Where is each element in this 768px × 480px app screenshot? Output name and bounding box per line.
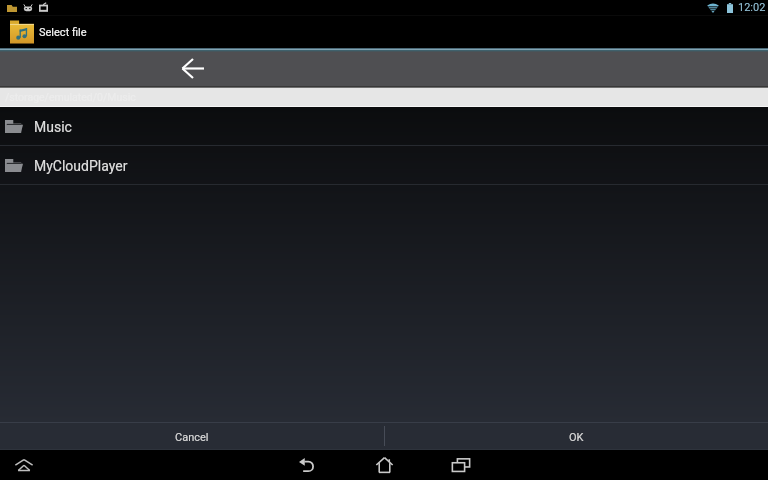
staticText: Select file <box>39 26 87 39</box>
staticText: 12:02 <box>738 1 766 14</box>
button[interactable]: Expand notifications <box>10 451 38 479</box>
button[interactable]: Back <box>292 450 322 480</box>
staticText: OK <box>569 431 584 444</box>
button[interactable]: Music <box>0 107 768 145</box>
staticText: MyCloudPlayer <box>34 158 128 174</box>
button[interactable]: Navigate up <box>172 51 213 85</box>
staticText: Cancel <box>175 431 209 444</box>
button[interactable]: MyCloudPlayer <box>0 146 768 184</box>
staticText: Music <box>34 119 72 135</box>
button[interactable]: Home <box>369 450 399 480</box>
button[interactable]: Cancel <box>0 423 384 449</box>
button[interactable]: OK <box>384 423 768 449</box>
button[interactable]: Recent apps <box>446 450 476 480</box>
